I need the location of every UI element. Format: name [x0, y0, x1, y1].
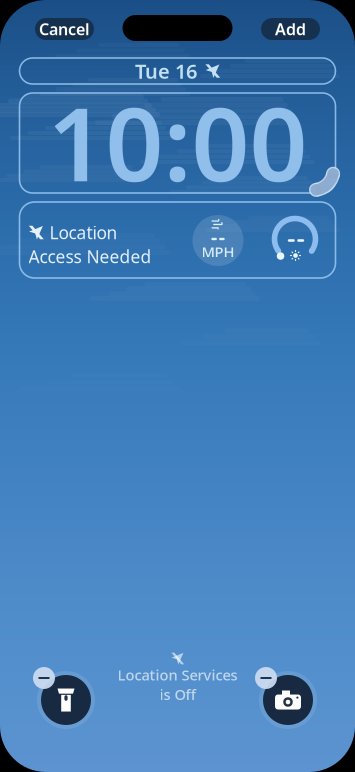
staticText: Tue 16 [135, 58, 197, 84]
button[interactable]: Remove Camera control [256, 668, 320, 732]
staticText: Location Services [117, 665, 237, 684]
staticText: Location [49, 221, 117, 244]
staticText: Add [275, 18, 306, 40]
button[interactable]: Add [261, 18, 320, 40]
staticText: 10:00 [47, 75, 307, 209]
staticText: is Off [159, 684, 195, 704]
button[interactable]: Tue 16 [19, 58, 335, 84]
button[interactable]: Remove Flashlight control [34, 668, 98, 732]
staticText: Cancel [39, 18, 90, 40]
staticText: Access Needed [28, 245, 151, 268]
button[interactable]: Cancel [35, 18, 94, 40]
staticText: MPH [201, 242, 234, 261]
